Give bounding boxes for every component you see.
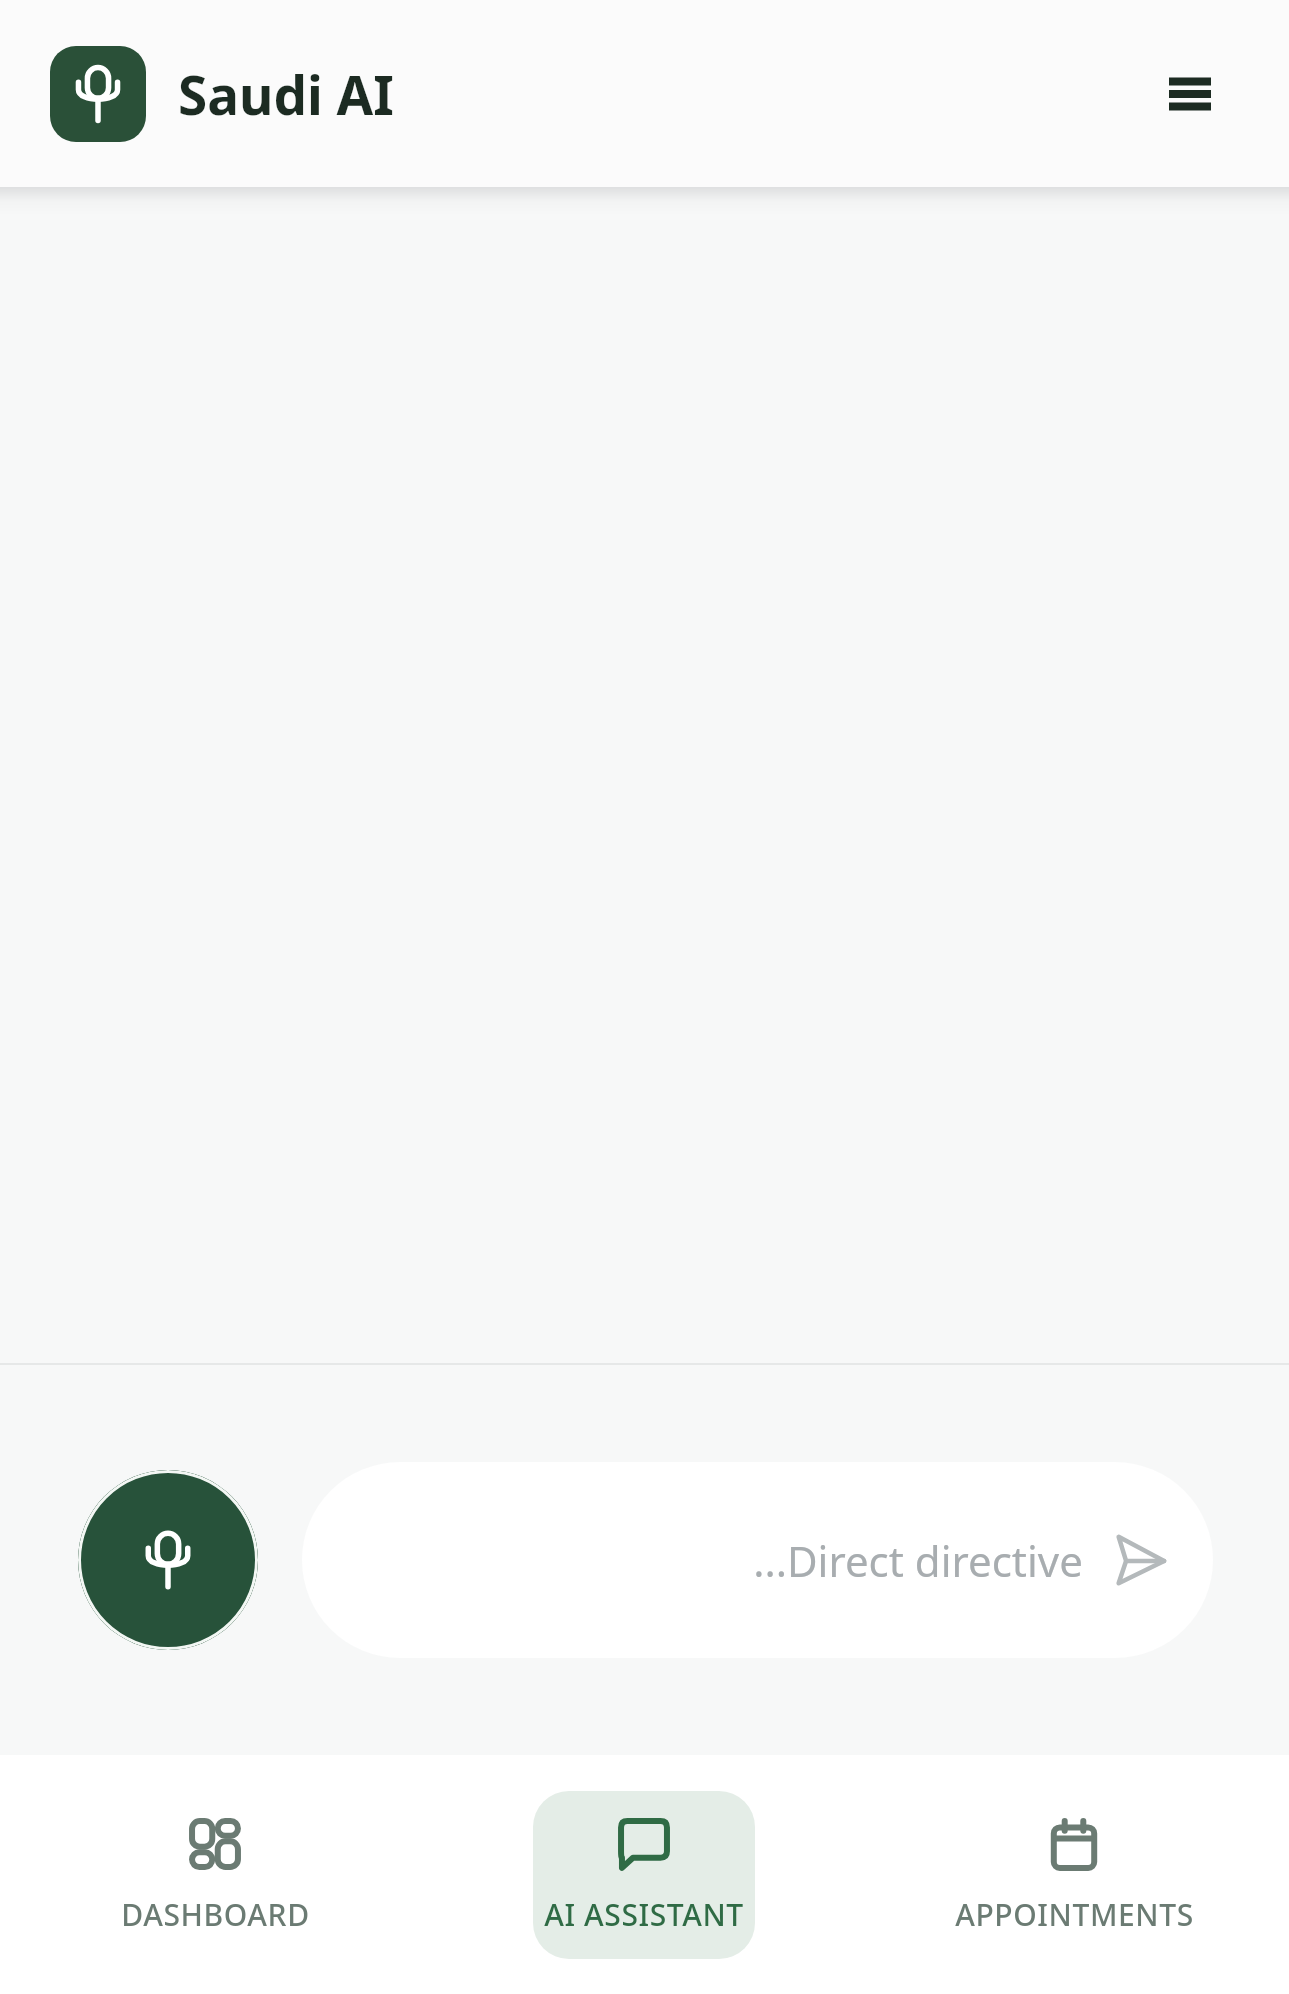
staticText: APPOINTMENTS bbox=[955, 1894, 1194, 1935]
button[interactable]: ...Direct directive bbox=[302, 1462, 1213, 1658]
button[interactable]: Menu bbox=[1147, 51, 1233, 137]
other: Send bbox=[1109, 1529, 1171, 1591]
staticText: AI ASSISTANT bbox=[544, 1894, 744, 1935]
staticText: ...Direct directive bbox=[753, 1532, 1083, 1589]
button[interactable]: Voice input bbox=[78, 1470, 258, 1650]
staticText: DASHBOARD bbox=[121, 1894, 310, 1935]
button[interactable]: Saudi AI logo bbox=[50, 46, 146, 142]
staticText: Saudi AI bbox=[178, 58, 394, 130]
button[interactable]: APPOINTMENTS bbox=[924, 1791, 1224, 1959]
button[interactable]: DASHBOARD bbox=[65, 1791, 365, 1959]
button[interactable]: AI ASSISTANT bbox=[533, 1791, 755, 1959]
